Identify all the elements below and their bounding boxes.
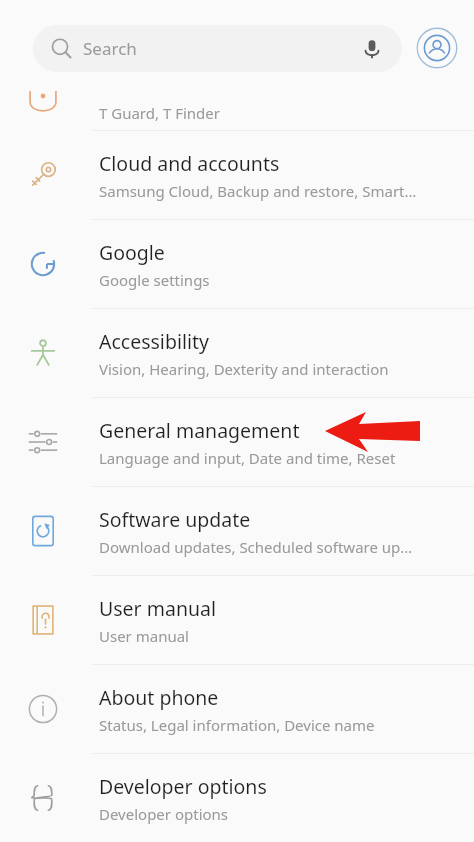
staticText: Google [99,239,165,266]
button[interactable]: General management [0,398,474,486]
staticText: Search [83,37,359,60]
button[interactable]: Search [33,25,402,72]
staticText: Google settings [99,270,210,290]
staticText: User manual [99,595,216,622]
button[interactable]: Software update [0,487,474,575]
button[interactable]: Account [416,27,458,69]
button[interactable]: Cloud and accounts [0,131,474,219]
button[interactable]: Accessibility [0,309,474,397]
staticText: General management [99,417,300,444]
staticText: Vision, Hearing, Dexterity and interacti… [99,359,389,379]
staticText: User manual [99,626,189,646]
button[interactable]: User manual [0,576,474,664]
staticText: Download updates, Scheduled software up… [99,537,413,557]
button[interactable]: Voice search [359,36,385,62]
staticText: Cloud and accounts [99,150,280,177]
staticText: Status, Legal information, Device name [99,715,375,735]
staticText: Samsung Cloud, Backup and restore, Smart… [99,181,417,201]
staticText: Software update [99,506,251,533]
button[interactable]: T Guard, T Finder [0,96,474,130]
staticText: T Guard, T Finder [99,103,220,123]
staticText: Developer options [99,773,267,800]
button[interactable]: Developer options [0,754,474,842]
staticText: Language and input, Date and time, Reset [99,448,396,468]
button[interactable]: About phone [0,665,474,753]
staticText: Developer options [99,804,229,824]
staticText: About phone [99,684,219,711]
button[interactable]: Google [0,220,474,308]
staticText: Accessibility [99,328,209,355]
